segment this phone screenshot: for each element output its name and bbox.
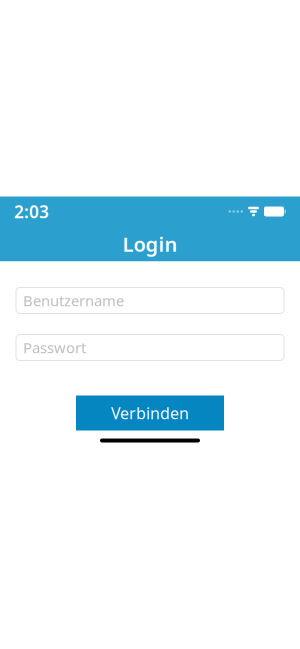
staticText: Benutzername xyxy=(23,291,124,310)
staticText: Login xyxy=(122,231,177,257)
staticText: 2:03 xyxy=(14,200,49,223)
staticText: Passwort xyxy=(23,338,86,357)
button[interactable]: Verbinden xyxy=(76,395,224,430)
staticText: Verbinden xyxy=(111,402,189,424)
